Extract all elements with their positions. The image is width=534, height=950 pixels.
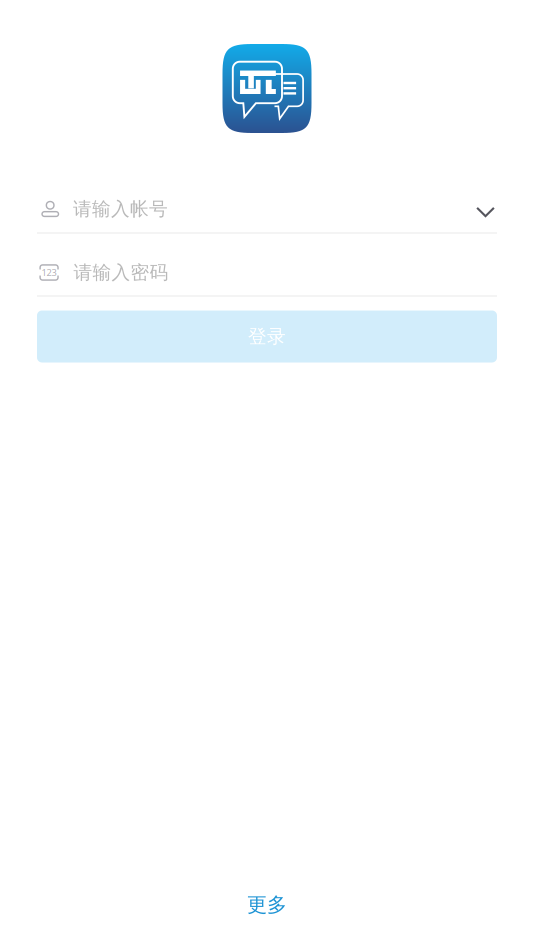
staticText: 请输入帐号 [73,197,168,220]
staticText: 123 [42,266,57,279]
button[interactable]: 请输入帐号 [37,185,476,232]
button[interactable]: 展开已保存的帐号 [476,185,497,232]
staticText: 更多 [247,892,287,917]
button[interactable]: 更多 [231,884,303,925]
staticText: 请输入密码 [73,261,168,284]
staticText: 登录 [248,325,286,348]
button[interactable]: 123 [0,249,534,296]
button[interactable]: 登录 [0,310,534,362]
